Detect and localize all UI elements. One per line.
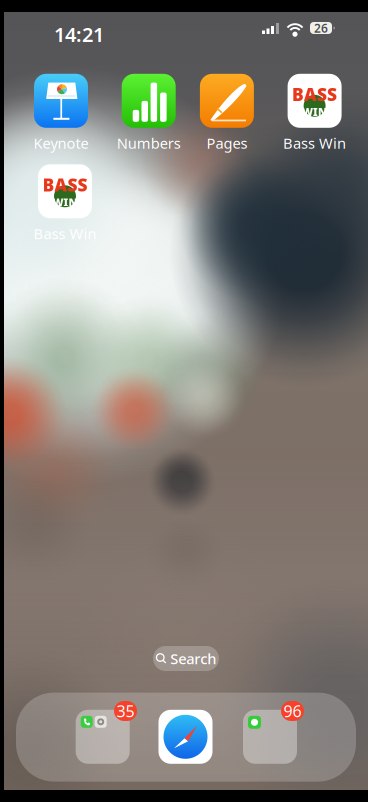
staticText: BASS [42, 173, 87, 196]
button[interactable]: Safari [158, 710, 212, 764]
staticText: Pages [206, 133, 247, 153]
button[interactable]: Keynote [33, 74, 88, 153]
staticText: Bass Win [33, 224, 96, 243]
button[interactable]: Folder [243, 710, 297, 764]
staticText: Numbers [117, 133, 181, 153]
staticText: WIN [52, 195, 77, 209]
button[interactable]: Search [153, 646, 219, 671]
staticText: Bass Win [283, 133, 346, 153]
staticText: BASS [292, 83, 337, 106]
button[interactable]: Folder [76, 710, 130, 764]
button[interactable]: Numbers [117, 74, 181, 153]
staticText: 26 [314, 20, 328, 36]
button[interactable]: Pages [200, 74, 254, 153]
staticText: 96 [283, 700, 301, 722]
staticText: WIN [302, 105, 327, 119]
staticText: Keynote [33, 133, 88, 153]
staticText: Search [170, 649, 216, 668]
staticText: 14:21 [54, 21, 104, 48]
button[interactable]: BASS [283, 74, 346, 153]
staticText: 35 [116, 700, 134, 722]
button[interactable]: BASS [33, 164, 96, 243]
